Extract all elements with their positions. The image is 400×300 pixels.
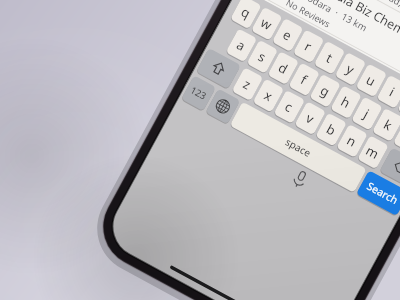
button[interactable]: Photo of a phone showing the iOS keyboar… <box>0 0 400 300</box>
